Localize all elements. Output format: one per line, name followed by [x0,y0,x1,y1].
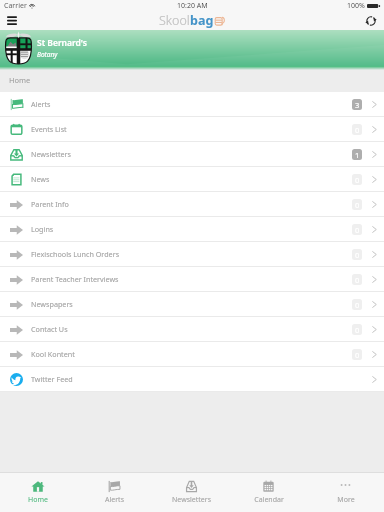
staticText: Calendar [254,495,284,505]
staticText: bag [190,12,214,29]
button[interactable]: Newsletters [153,473,230,512]
button[interactable]: Newspapers [0,292,384,317]
staticText: Home [28,495,48,505]
staticText: 0 [355,325,360,335]
staticText: Kool Kontent [31,349,75,359]
staticText: 3 [355,100,360,110]
staticText: Parent Teacher Interviews [31,274,119,284]
staticText: Flexischools Lunch Orders [31,249,120,259]
button[interactable]: Contact Us [0,317,384,342]
staticText: St Bernard's [37,37,87,49]
staticText: 0 [355,225,360,235]
button[interactable]: Twitter Feed [0,367,384,392]
staticText: 10:20 AM [177,1,208,11]
staticText: 0 [355,300,360,310]
button[interactable]: Menu [0,11,23,30]
staticText: Skool [159,12,190,29]
button[interactable]: Parent Teacher Interviews [0,267,384,292]
button[interactable]: More [307,473,384,512]
staticText: 0 [355,125,360,135]
staticText: Twitter Feed [31,374,73,384]
staticText: Alerts [105,495,124,505]
staticText: More [337,495,355,505]
button[interactable]: Calendar [230,473,307,512]
staticText: Alerts [31,99,51,109]
staticText: Newsletters [172,495,211,505]
button[interactable]: Parent Info [0,192,384,217]
staticText: 0 [355,350,360,360]
staticText: 0 [355,250,360,260]
staticText: Home [9,75,31,85]
staticText: Parent Info [31,199,69,209]
button[interactable]: Kool Kontent [0,342,384,367]
button[interactable]: Logins [0,217,384,242]
staticText: Carrier [4,1,27,11]
staticText: Logins [31,224,54,234]
staticText: 1 [355,150,360,160]
button[interactable]: Events List [0,117,384,142]
button[interactable]: Home [0,473,76,512]
button[interactable]: Newsletters [0,142,384,167]
staticText: 0 [355,275,360,285]
staticText: Newspapers [31,299,73,309]
staticText: Newsletters [31,149,72,159]
staticText: News [31,174,50,184]
staticText: Events List [31,124,67,134]
button[interactable]: Alerts [76,473,153,512]
staticText: 0 [355,175,360,185]
staticText: 0 [355,200,360,210]
button[interactable]: Flexischools Lunch Orders [0,242,384,267]
staticText: Botany [37,50,58,59]
staticText: 100% [347,1,365,11]
button[interactable]: Alerts [0,92,384,117]
button[interactable]: St Bernard's [0,30,384,66]
staticText: Contact Us [31,324,68,334]
button[interactable]: News [0,167,384,192]
button[interactable]: Refresh [358,11,384,30]
